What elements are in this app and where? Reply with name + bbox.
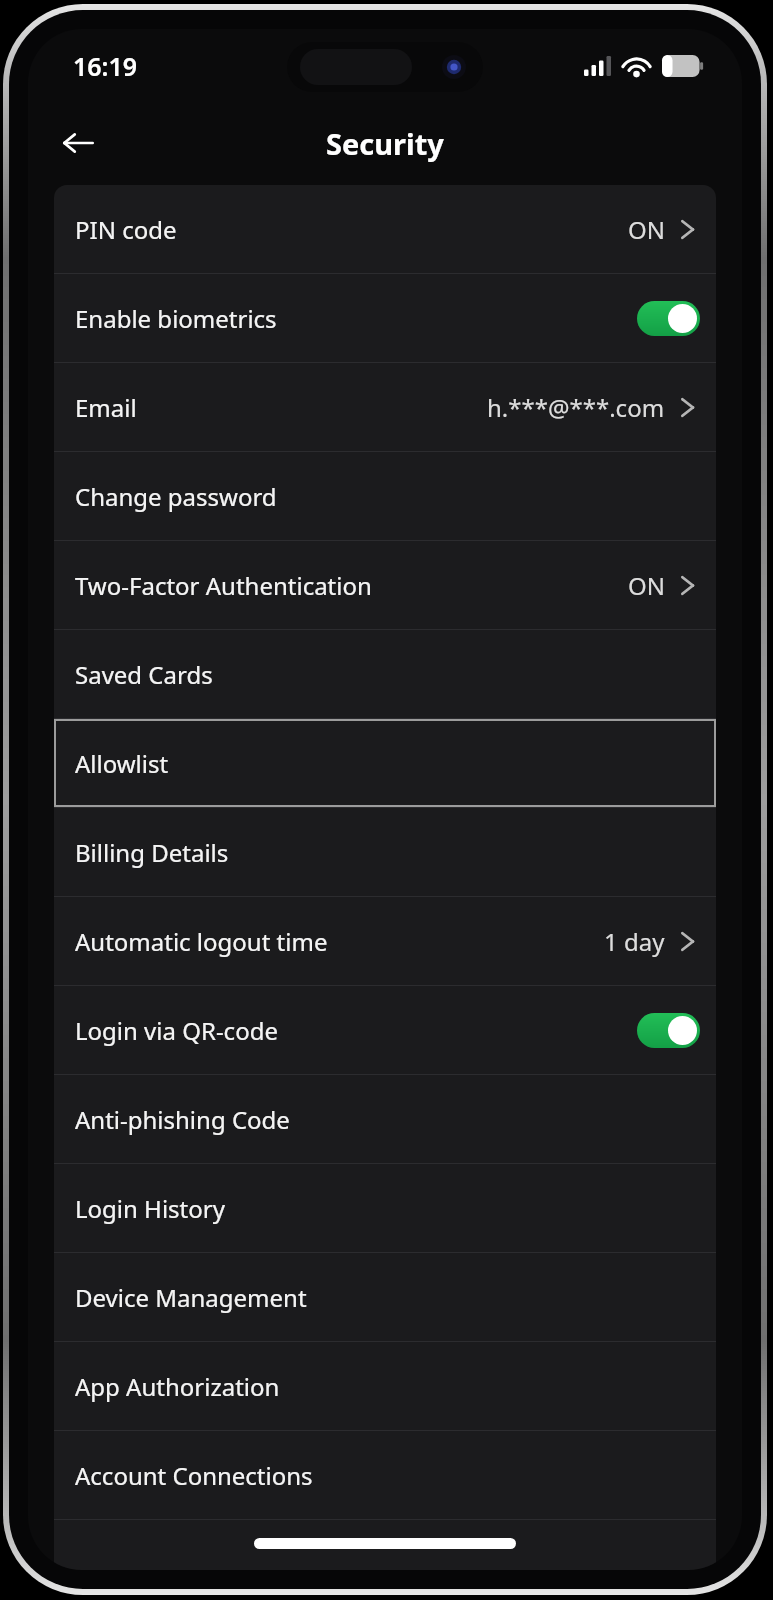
button[interactable]: Back <box>50 115 106 171</box>
staticText: Email <box>75 391 137 424</box>
staticText: ON <box>628 569 665 602</box>
staticText: PIN code <box>75 213 177 246</box>
button[interactable]: Saved Cards <box>54 630 716 718</box>
staticText: h.***@***.com <box>487 391 665 424</box>
staticText: Billing Details <box>75 836 229 869</box>
staticText: 16:19 <box>73 49 138 83</box>
staticText: Automatic logout time <box>75 925 328 958</box>
staticText: Login History <box>75 1192 225 1225</box>
staticText: Device Management <box>75 1281 307 1314</box>
staticText: Enable biometrics <box>75 302 277 335</box>
button[interactable]: PIN code <box>54 185 716 273</box>
staticText: Account Connections <box>75 1459 313 1492</box>
button[interactable]: Enable biometrics <box>54 274 716 362</box>
button[interactable]: Automatic logout time <box>54 897 716 985</box>
button[interactable]: Anti-phishing Code <box>54 1075 716 1163</box>
button[interactable]: Login via QR-code <box>54 986 716 1074</box>
button[interactable]: Login History <box>54 1164 716 1252</box>
button[interactable]: Two-Factor Authentication <box>54 541 716 629</box>
staticText: 1 day <box>604 925 665 958</box>
staticText: Saved Cards <box>75 658 213 691</box>
button[interactable]: Device Management <box>54 1253 716 1341</box>
staticText: Allowlist <box>75 747 169 780</box>
button[interactable]: Login via QR-code <box>637 1013 700 1048</box>
staticText: ON <box>628 213 665 246</box>
button[interactable]: Email <box>54 363 716 451</box>
button[interactable]: Enable biometrics <box>637 301 700 336</box>
button[interactable]: Allowlist <box>54 719 716 807</box>
staticText: Change password <box>75 480 277 513</box>
staticText: Anti-phishing Code <box>75 1103 290 1136</box>
staticText: Two-Factor Authentication <box>75 569 372 602</box>
button[interactable]: Account Connections <box>54 1431 716 1519</box>
button[interactable]: App Authorization <box>54 1342 716 1430</box>
staticText: Login via QR-code <box>75 1014 278 1047</box>
staticText: Security <box>326 124 444 163</box>
button[interactable]: Billing Details <box>54 808 716 896</box>
button[interactable]: Change password <box>54 452 716 540</box>
staticText: App Authorization <box>75 1370 280 1403</box>
